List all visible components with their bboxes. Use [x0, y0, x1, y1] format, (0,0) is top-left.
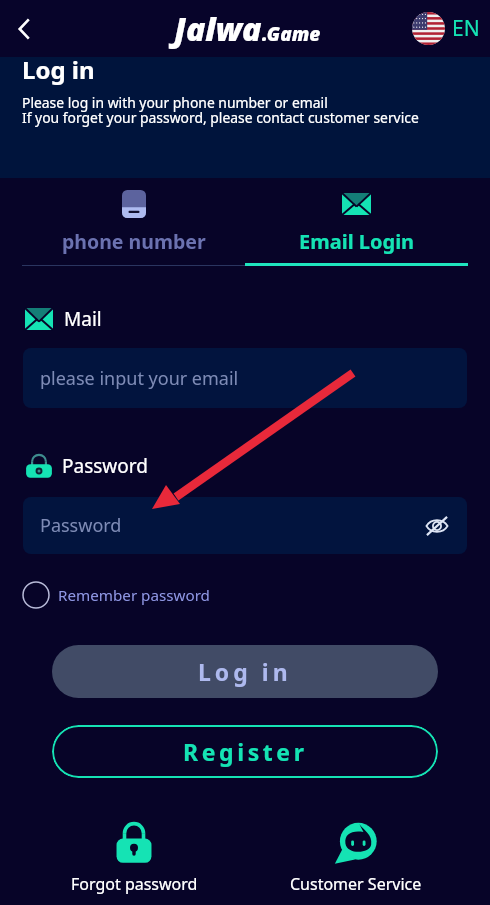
staticText: Jalwa: [174, 7, 262, 51]
staticText: Forgot password: [71, 873, 198, 895]
button[interactable]: Customer Service: [245, 821, 467, 895]
button[interactable]: Forgot password: [23, 821, 245, 895]
staticText: .Game: [262, 21, 321, 47]
button[interactable]: Back: [2, 7, 46, 51]
staticText: Log in: [198, 656, 292, 687]
staticText: phone number: [62, 228, 206, 255]
staticText: EN: [452, 14, 480, 43]
staticText: Mail: [64, 306, 102, 332]
staticText: Register: [183, 736, 308, 767]
button[interactable]: Password: [23, 497, 467, 554]
button[interactable]: Remember password: [22, 581, 210, 609]
button[interactable]: Show password: [421, 510, 453, 542]
staticText: Remember password: [58, 585, 210, 606]
staticText: Password: [62, 453, 148, 479]
staticText: Please log in with your phone number or …: [22, 93, 328, 112]
staticText: Log in: [22, 53, 95, 86]
button[interactable]: phone number: [22, 178, 245, 266]
staticText: Password: [40, 513, 122, 538]
button[interactable]: Log in: [52, 645, 438, 698]
button[interactable]: Register: [52, 725, 438, 778]
button[interactable]: Email Login: [245, 178, 468, 266]
button[interactable]: please input your email: [23, 348, 467, 408]
staticText: Email Login: [299, 228, 415, 255]
staticText: If you forget your password, please cont…: [22, 108, 419, 127]
button[interactable]: EN: [412, 12, 480, 45]
staticText: please input your email: [40, 366, 239, 391]
staticText: Customer Service: [290, 873, 422, 895]
